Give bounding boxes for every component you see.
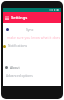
staticText: make sure you know what it does <box>7 35 61 40</box>
staticText: Advanced options <box>6 74 33 78</box>
staticText: Sync <box>26 27 34 32</box>
staticText: Notifications <box>8 44 27 48</box>
button[interactable]: About <box>3 64 61 70</box>
staticText: Settings <box>11 15 28 21</box>
button[interactable]: Notifications <box>3 42 61 50</box>
staticText: About <box>10 65 20 70</box>
button[interactable]: make sure you know what it does <box>3 33 61 42</box>
button[interactable]: Sync <box>3 26 61 33</box>
button[interactable]: Navigation menu <box>3 12 11 23</box>
